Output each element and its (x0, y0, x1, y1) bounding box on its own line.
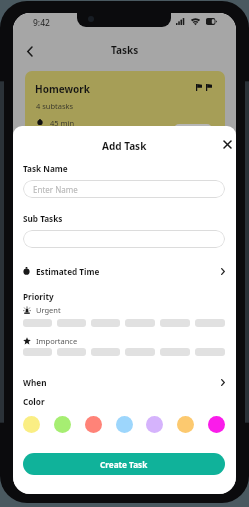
button[interactable]: Back (17, 39, 41, 63)
button[interactable]: Homework (25, 71, 225, 141)
button[interactable] (23, 319, 52, 327)
staticText: Priority (23, 291, 54, 302)
staticText: Add Task (102, 139, 147, 153)
staticText: When (23, 377, 47, 388)
button[interactable]: Color 6 (208, 416, 225, 433)
button[interactable] (57, 348, 86, 356)
staticText: Homework (35, 82, 90, 96)
button[interactable] (57, 319, 86, 327)
button[interactable] (195, 348, 225, 356)
staticText: Task Name (23, 163, 68, 174)
staticText: Create Task (100, 459, 148, 470)
staticText: Estimated Time (36, 266, 100, 277)
button[interactable]: Enter Name (23, 180, 225, 198)
button[interactable] (125, 319, 155, 327)
button[interactable] (160, 319, 190, 327)
staticText: Tasks (111, 43, 139, 57)
button[interactable]: Create Task (23, 453, 225, 475)
staticText: Urgent (36, 305, 61, 315)
staticText: 9:42 (33, 17, 50, 29)
button[interactable]: Color 2 (85, 416, 102, 433)
staticText: Sub Tasks (23, 213, 63, 224)
button[interactable] (125, 348, 155, 356)
staticText: Enter Name (33, 184, 78, 195)
button[interactable] (160, 348, 190, 356)
staticText: Importance (36, 336, 78, 346)
button[interactable]: Color 3 (116, 416, 133, 433)
button[interactable] (23, 230, 225, 248)
button[interactable]: When (23, 374, 225, 390)
button[interactable]: Color 1 (54, 416, 71, 433)
button[interactable] (91, 348, 120, 356)
button[interactable] (195, 319, 225, 327)
staticText: Color (23, 396, 45, 407)
button[interactable] (91, 319, 120, 327)
button[interactable]: Color 0 (23, 416, 40, 433)
button[interactable]: Color 4 (146, 416, 163, 433)
button[interactable]: Estimated Time (23, 263, 225, 279)
button[interactable]: Close (217, 134, 236, 154)
staticText: 4 subtasks (36, 101, 74, 111)
staticText: 45 min (50, 118, 75, 128)
button[interactable] (23, 348, 52, 356)
button[interactable]: Color 5 (177, 416, 194, 433)
